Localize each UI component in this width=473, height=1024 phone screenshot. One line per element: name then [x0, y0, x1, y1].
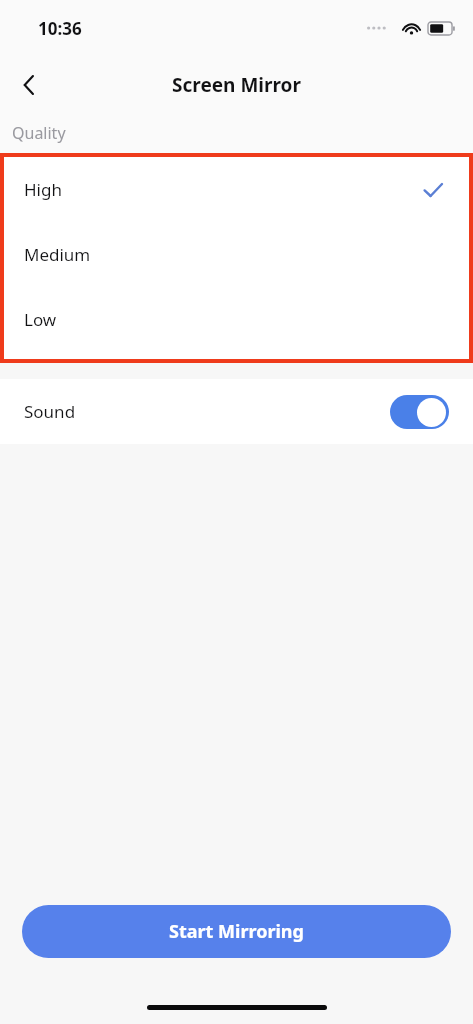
button[interactable]: High — [4, 157, 469, 222]
button[interactable]: Sound — [0, 379, 473, 444]
staticText: Screen Mirror — [172, 72, 301, 98]
button[interactable]: Medium — [4, 222, 469, 287]
staticText: Quality — [12, 122, 66, 144]
staticText: Low — [24, 308, 57, 331]
staticText: High — [24, 178, 62, 201]
staticText: 10:36 — [38, 17, 82, 40]
button[interactable]: Start Mirroring — [22, 905, 451, 958]
button[interactable]: Sound toggle, on — [390, 395, 449, 429]
button[interactable]: Back — [6, 62, 52, 108]
button[interactable]: Low — [4, 287, 469, 352]
staticText: Medium — [24, 243, 91, 266]
staticText: Sound — [24, 400, 76, 423]
staticText: Start Mirroring — [169, 919, 304, 944]
